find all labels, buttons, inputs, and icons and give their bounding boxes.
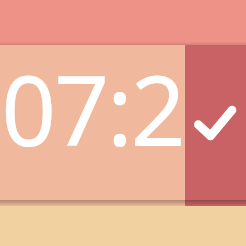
button[interactable]: 07:20 [0,45,185,206]
button[interactable]: Alarm enabled [185,45,246,206]
staticText: 07:20 [0,43,185,204]
